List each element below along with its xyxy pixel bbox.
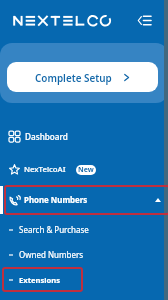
button[interactable]: Search & Purchase <box>0 219 168 240</box>
button[interactable]: Dashboard <box>0 125 168 148</box>
button[interactable]: New <box>76 165 96 175</box>
button[interactable]: Owned Numbers <box>0 244 168 265</box>
button[interactable]: Extensions <box>0 269 168 290</box>
staticText: Search & Purchase <box>19 224 89 235</box>
staticText: Phone Numbers <box>24 195 88 206</box>
staticText: Owned Numbers <box>19 249 84 260</box>
button[interactable]: Complete Setup <box>7 62 158 92</box>
button[interactable]: Collapse menu <box>136 12 153 29</box>
button[interactable]: Nextelco <box>12 14 112 28</box>
button[interactable]: NexTelcoAI <box>0 158 168 181</box>
staticText: Extensions <box>19 275 60 285</box>
staticText: NexTelcoAI <box>24 164 66 175</box>
staticText: Dashboard <box>25 131 68 142</box>
staticText: Complete Setup <box>35 71 112 84</box>
button[interactable]: Phone Numbers <box>0 186 168 214</box>
staticText: New <box>78 165 94 175</box>
